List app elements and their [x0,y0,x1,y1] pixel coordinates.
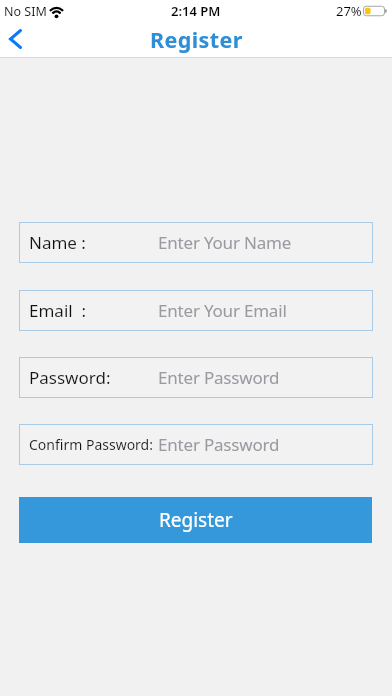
button[interactable] [2,26,28,52]
staticText: 27% [336,2,362,20]
staticText: Enter Password [158,366,280,389]
button[interactable]: Name : [19,222,373,263]
staticText: Enter Your Name [158,231,292,254]
staticText: Register [159,507,233,533]
button[interactable]: Register [19,497,372,543]
staticText: Confirm Password: [29,435,153,454]
button[interactable]: Confirm Password: [19,424,373,465]
button[interactable]: Email : [19,290,373,331]
staticText: Register [150,25,243,54]
staticText: Enter Password [158,433,280,456]
button[interactable]: Password: [19,357,373,398]
staticText: Email : [29,299,87,322]
staticText: Enter Your Email [158,299,287,322]
staticText: No SIM [4,3,47,20]
staticText: Password: [29,366,111,389]
staticText: Name : [29,231,86,254]
staticText: 2:14 PM [171,2,221,20]
